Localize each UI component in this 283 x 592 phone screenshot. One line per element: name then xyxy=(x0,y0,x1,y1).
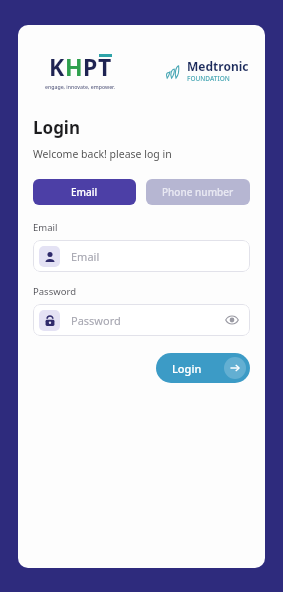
staticText: Login xyxy=(33,116,81,139)
button[interactable]: Show password xyxy=(222,310,242,330)
staticText: Email xyxy=(71,185,98,199)
staticText: Password xyxy=(33,285,76,298)
staticText: engage, innovate, empower. xyxy=(45,83,115,90)
staticText: P xyxy=(83,51,98,82)
staticText: Medtronic xyxy=(187,58,249,74)
staticText: FOUNDATION xyxy=(187,74,230,83)
button[interactable]: Email xyxy=(33,179,136,205)
staticText: T xyxy=(98,51,112,82)
button[interactable]: Email xyxy=(33,240,250,272)
staticText: Phone number xyxy=(162,185,234,199)
staticText: Email xyxy=(33,221,58,234)
staticText: Password xyxy=(71,313,121,328)
staticText: Welcome back! please log in xyxy=(33,147,172,161)
button[interactable]: Phone number xyxy=(146,179,250,205)
staticText: K xyxy=(49,51,65,82)
staticText: Email xyxy=(71,249,100,264)
staticText: H xyxy=(65,51,83,82)
button[interactable]: Login xyxy=(156,353,250,383)
button[interactable]: Password xyxy=(33,304,250,336)
staticText: Login xyxy=(172,361,202,376)
